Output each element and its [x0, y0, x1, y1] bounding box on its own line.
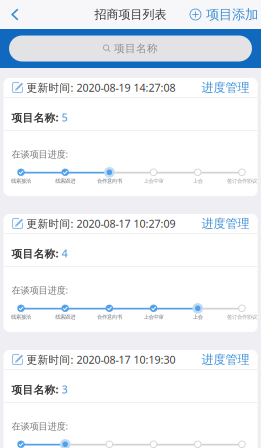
staticText: 上会中审: [144, 178, 164, 184]
button[interactable]: 进度管理: [201, 216, 249, 231]
button[interactable]: Back: [0, 0, 30, 29]
button[interactable]: 进度管理: [201, 80, 249, 95]
staticText: 上会中审: [144, 314, 164, 320]
button[interactable]: 项目名称: [9, 35, 252, 61]
staticText: 上会: [193, 178, 203, 184]
staticText: 进度管理: [201, 352, 249, 367]
staticText: 更新时间: 2020-08-19 14:27:08: [23, 80, 175, 95]
staticText: 项目名称:: [11, 110, 61, 124]
staticText: 线索跟进: [55, 314, 75, 320]
staticText: 线索跟进: [55, 178, 75, 184]
staticText: 在谈项目进度:: [11, 148, 68, 160]
staticText: 5: [61, 110, 67, 124]
button[interactable]: 项目添加: [190, 0, 261, 29]
staticText: 招商项目列表: [94, 7, 166, 22]
staticText: 合作意向书: [97, 314, 122, 320]
staticText: 签订合作协议: [227, 314, 257, 320]
staticText: 更新时间: 2020-08-17 10:19:30: [23, 352, 175, 367]
staticText: 3: [61, 382, 67, 396]
staticText: 更新时间: 2020-08-17 10:27:09: [23, 216, 175, 231]
staticText: 进度管理: [201, 216, 249, 231]
staticText: 项目名称: [114, 42, 158, 55]
staticText: 线索接洽: [11, 314, 31, 320]
staticText: 签订合作协议: [227, 178, 257, 184]
staticText: 项目名称:: [11, 246, 61, 260]
staticText: 在谈项目进度:: [11, 284, 68, 296]
staticText: 上会: [193, 314, 203, 320]
staticText: 进度管理: [201, 80, 249, 95]
staticText: 合作意向书: [97, 178, 122, 184]
staticText: 在谈项目进度:: [11, 420, 68, 432]
staticText: 项目添加: [206, 6, 258, 23]
staticText: 项目名称:: [11, 382, 61, 396]
button[interactable]: 进度管理: [201, 352, 249, 367]
staticText: 线索接洽: [11, 178, 31, 184]
staticText: 4: [61, 246, 67, 260]
